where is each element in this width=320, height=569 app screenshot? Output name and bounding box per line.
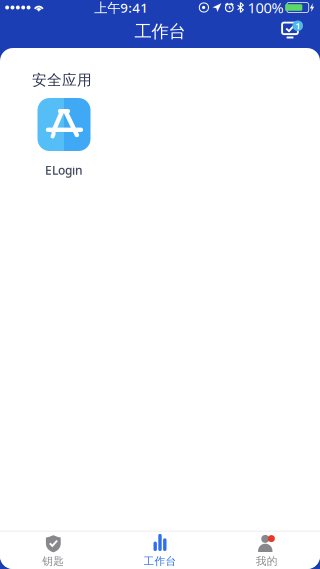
button[interactable]: 工作台 xyxy=(107,530,213,569)
button[interactable]: 钥匙 xyxy=(0,530,107,569)
staticText: 工作台 xyxy=(134,21,185,42)
staticText: 安全应用 xyxy=(32,71,92,89)
staticText: 上午9:41 xyxy=(94,0,148,16)
button[interactable]: 消息 xyxy=(277,18,309,44)
staticText: 我的 xyxy=(256,555,278,568)
button[interactable]: ELogin xyxy=(29,98,99,178)
button[interactable]: 我的 xyxy=(213,530,320,569)
staticText: 100% xyxy=(247,0,283,17)
staticText: ELogin xyxy=(45,162,83,178)
staticText: 钥匙 xyxy=(42,555,64,568)
staticText: 1 xyxy=(295,20,300,32)
staticText: 工作台 xyxy=(143,555,176,568)
